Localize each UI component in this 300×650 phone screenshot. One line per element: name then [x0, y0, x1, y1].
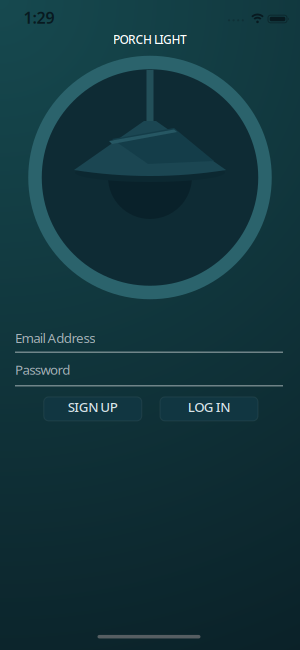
staticText: 1:29: [23, 7, 54, 28]
button[interactable]: Email Address: [15, 329, 283, 353]
staticText: Email Address: [15, 329, 95, 347]
staticText: LOG IN: [188, 398, 230, 416]
staticText: PORCH LIGHT: [113, 31, 187, 47]
staticText: Password: [15, 361, 70, 378]
staticText: SIGN UP: [68, 398, 118, 416]
button[interactable]: LOG IN: [160, 397, 258, 421]
button[interactable]: SIGN UP: [44, 397, 142, 421]
button[interactable]: Password: [15, 361, 283, 386]
